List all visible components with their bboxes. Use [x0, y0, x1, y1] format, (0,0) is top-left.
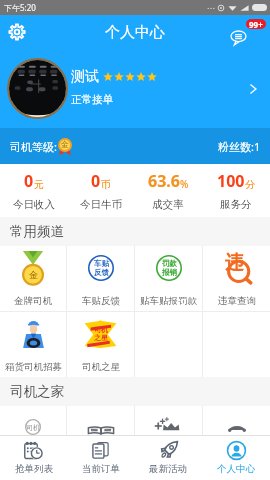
staticText: 金牌司机	[14, 295, 52, 307]
button[interactable]: 最新活动	[134, 436, 202, 480]
staticText: 罚款	[162, 259, 177, 268]
button[interactable]: 0	[67, 170, 134, 211]
button[interactable]: 金	[0, 246, 66, 311]
staticText: 粉丝数:1	[218, 139, 261, 154]
staticText: 车贴	[94, 259, 109, 268]
button[interactable]: 63.6	[134, 170, 202, 211]
staticText: 0	[24, 170, 34, 192]
staticText: 成交率	[152, 198, 184, 211]
button[interactable]: 当前订单	[67, 436, 134, 480]
button[interactable]: 车贴	[67, 246, 134, 311]
button[interactable]: 测试	[0, 49, 270, 128]
staticText: 个人中心	[105, 23, 165, 42]
button[interactable]: 司机 之星	[67, 312, 134, 377]
staticText: 司机	[26, 423, 40, 432]
staticText: 司机 之星	[94, 325, 108, 342]
button[interactable]: 抢单列表	[0, 436, 67, 480]
staticText: 测试	[71, 68, 99, 86]
staticText: 司机等级:	[10, 139, 57, 154]
staticText: 贴车贴报罚款	[140, 295, 197, 307]
staticText: 反馈	[94, 268, 109, 277]
button[interactable]: 0	[0, 170, 67, 211]
button[interactable]: 司机认证	[0, 406, 66, 435]
staticText: 违	[225, 251, 244, 275]
button[interactable]: 规章制度	[67, 406, 134, 435]
staticText: 抢单列表	[15, 463, 53, 475]
staticText: 车贴反馈	[82, 295, 120, 307]
staticText: 最新活动	[149, 463, 187, 475]
button[interactable]: 积分商城	[135, 406, 202, 435]
staticText: 金	[29, 269, 38, 280]
staticText: 报销	[162, 268, 177, 277]
staticText: 今日牛币	[80, 198, 122, 211]
staticText: 正常接单	[71, 93, 113, 106]
button[interactable]: 消息	[230, 19, 270, 45]
button[interactable]: 违	[203, 246, 270, 311]
button[interactable]: 箱货司机招募	[0, 312, 66, 377]
staticText: %	[180, 177, 189, 191]
staticText: 司机之星	[82, 361, 120, 373]
staticText: 币	[101, 178, 111, 191]
staticText: 分	[245, 178, 255, 191]
staticText: 金	[61, 139, 69, 149]
staticText: 100	[217, 170, 245, 192]
staticText: 0	[91, 170, 101, 192]
staticText: 当前订单	[82, 463, 120, 475]
staticText: 今日收入	[13, 198, 55, 211]
button[interactable]: 个人中心	[202, 436, 270, 480]
button[interactable]: 保险服务	[203, 406, 270, 435]
button[interactable]: 设置	[6, 21, 28, 43]
button[interactable]: 100	[202, 170, 270, 211]
staticText: 服务分	[220, 198, 252, 211]
staticText: 常用频道	[10, 223, 64, 240]
staticText: 63.6	[148, 170, 180, 192]
staticText: 99+	[249, 19, 263, 29]
staticText: 司机之家	[10, 383, 64, 400]
staticText: 个人中心	[217, 463, 255, 475]
staticText: 元	[34, 178, 44, 191]
button[interactable]: 罚款	[135, 246, 202, 311]
staticText: 违章查询	[218, 295, 256, 307]
staticText: 箱货司机招募	[5, 361, 62, 373]
staticText: 下午5:20	[4, 2, 36, 13]
